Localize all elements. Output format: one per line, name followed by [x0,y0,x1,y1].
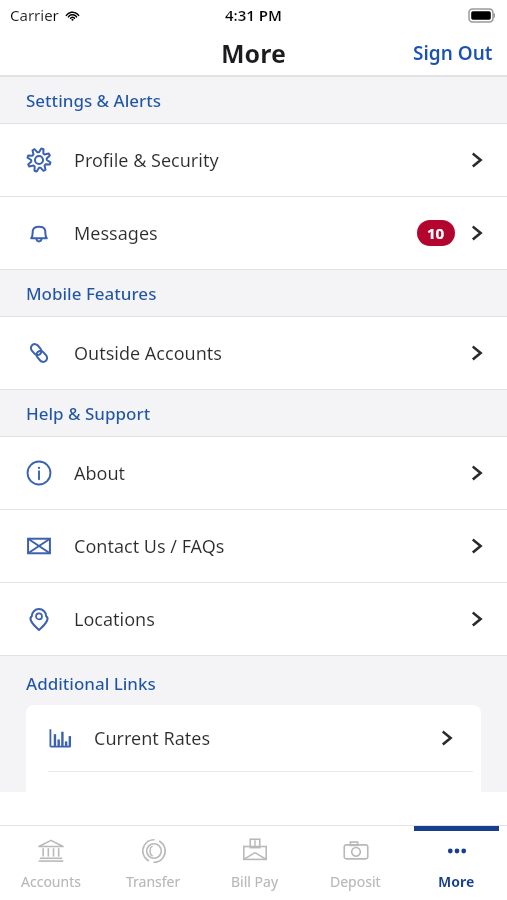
button[interactable]: Accounts [0,826,102,900]
other: Current Rates [48,726,72,750]
staticText: Mobile Features [26,282,157,305]
button[interactable]: More [406,826,507,900]
staticText: Sign Out [413,40,493,66]
other: Messages [26,220,52,246]
button[interactable]: Messages [0,197,507,269]
staticText: Bill Pay [231,872,279,891]
button[interactable]: About [0,437,507,509]
staticText: More [221,36,286,70]
staticText: Locations [74,607,155,632]
staticText: Contact Us / FAQs [74,534,225,559]
staticText: Additional Links [26,672,156,695]
staticText: Transfer [126,872,181,891]
staticText: Settings & Alerts [26,89,161,112]
button[interactable]: Sign Out [399,32,507,74]
other: About [26,460,52,486]
staticText: Outside Accounts [74,341,222,366]
staticText: More [438,872,475,891]
button[interactable]: Outside Accounts [0,317,507,389]
staticText: Accounts [21,872,81,891]
staticText: 10 [427,223,445,243]
staticText: Profile & Security [74,148,219,173]
staticText: Current Rates [94,726,211,751]
other: More [443,837,471,865]
button[interactable]: Settings [0,124,507,196]
button[interactable]: Deposit [305,826,406,900]
button[interactable]: Contact Us [0,510,507,582]
other: Contact Us [26,533,52,559]
other: Outside Accounts [26,340,52,366]
staticText: Messages [74,221,158,246]
staticText: Help & Support [26,402,151,425]
button[interactable]: Current Rates [26,705,481,771]
staticText: 4:31 PM [225,5,282,25]
other: Settings [26,147,52,173]
button[interactable]: Transfer [102,826,204,900]
button[interactable]: Bill Pay [204,826,305,900]
staticText: Deposit [330,872,381,891]
button[interactable]: Locations [0,583,507,655]
staticText: About [74,461,126,486]
staticText: Carrier [10,5,59,25]
other: Locations [26,606,52,632]
